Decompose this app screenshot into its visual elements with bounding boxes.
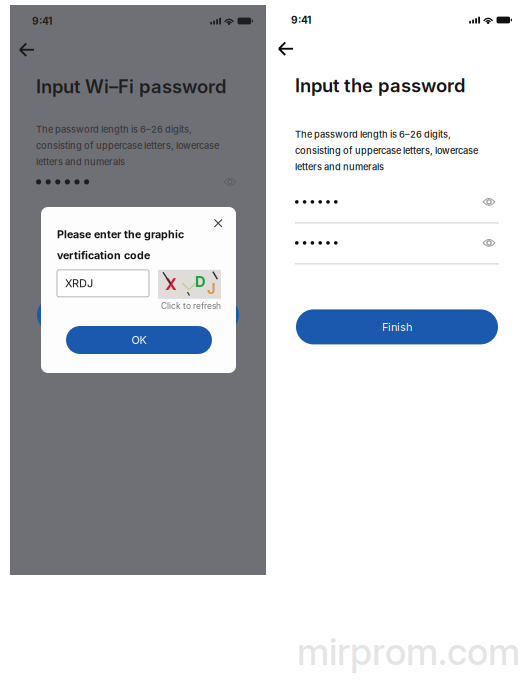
staticText: 9:41 xyxy=(32,15,52,27)
button[interactable]: Show password xyxy=(479,235,499,251)
staticText: letters and numerals xyxy=(36,156,125,167)
staticText: letters and numerals xyxy=(295,161,384,172)
staticText: The password length is 6–26 digits, xyxy=(36,124,192,135)
staticText: XRDJ xyxy=(65,277,93,290)
staticText: Please enter the graphic xyxy=(57,228,184,241)
staticText: X xyxy=(165,275,177,294)
staticText: vertification code xyxy=(57,249,150,262)
staticText: The password length is 6–26 digits, xyxy=(295,129,451,140)
staticText: Click to refresh xyxy=(161,301,221,311)
staticText: OK xyxy=(131,333,146,347)
staticText: consisting of uppercase letters, lowerca… xyxy=(36,140,219,151)
staticText: Finish xyxy=(382,320,412,333)
button[interactable]: Show password xyxy=(220,174,240,190)
staticText: Input Wi–Fi password xyxy=(36,75,226,98)
staticText: mirprom.com xyxy=(297,629,520,674)
staticText: Input the password xyxy=(295,74,465,97)
button[interactable]: Show password xyxy=(479,194,499,210)
button[interactable]: Finish xyxy=(37,297,239,332)
staticText: 9:41 xyxy=(291,14,311,26)
button[interactable]: Finish xyxy=(296,309,498,344)
staticText: J xyxy=(207,280,216,297)
button[interactable]: OK xyxy=(66,326,212,354)
staticText: D xyxy=(195,273,206,290)
button[interactable]: Back xyxy=(266,39,300,58)
button[interactable]: Back xyxy=(10,40,41,59)
staticText: consisting of uppercase letters, lowerca… xyxy=(295,145,478,156)
button[interactable]: Close xyxy=(208,213,229,234)
button[interactable]: Refresh captcha xyxy=(158,270,221,299)
